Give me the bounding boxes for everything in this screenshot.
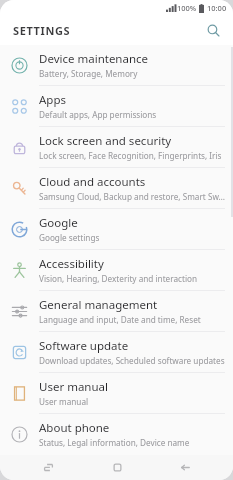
staticText: General management [39, 297, 158, 313]
button[interactable]: Lock screen and security [0, 127, 233, 168]
button[interactable]: Device maintenance [0, 45, 233, 86]
button[interactable]: Home [97, 455, 137, 480]
staticText: Status, Legal information, Device name [39, 437, 190, 448]
button[interactable]: Recents [28, 455, 68, 480]
button[interactable]: Search [201, 18, 225, 42]
button[interactable]: Back [165, 455, 205, 480]
staticText: Google settings [39, 232, 100, 243]
staticText: User manual [39, 396, 89, 407]
staticText: User manual [39, 379, 108, 395]
staticText: 100% [177, 3, 197, 13]
staticText: Apps [39, 92, 67, 108]
button[interactable]: About phone [0, 414, 233, 454]
staticText: Battery, Storage, Memory [39, 68, 138, 79]
button[interactable]: Accessibility [0, 250, 233, 291]
staticText: Device maintenance [39, 51, 149, 67]
staticText: Vision, Hearing, Dexterity and interacti… [39, 273, 198, 284]
staticText: Software update [39, 338, 129, 354]
staticText: Samsung Cloud, Backup and restore, Smart… [39, 191, 225, 202]
button[interactable]: Google [0, 209, 233, 250]
staticText: Language and input, Date and time, Reset [39, 314, 201, 325]
staticText: Accessibility [39, 256, 104, 272]
staticText: Lock screen, Face Recognition, Fingerpri… [39, 150, 222, 161]
button[interactable]: Cloud and accounts [0, 168, 233, 209]
button[interactable]: Software update [0, 332, 233, 373]
button[interactable]: General management [0, 291, 233, 332]
staticText: SETTINGS [13, 23, 71, 38]
staticText: About phone [39, 420, 110, 436]
staticText: 10:00 [207, 3, 227, 13]
staticText: Default apps, App permissions [39, 109, 157, 120]
staticText: Cloud and accounts [39, 174, 146, 190]
button[interactable]: User manual [0, 373, 233, 414]
staticText: Google [39, 215, 78, 231]
button[interactable]: Apps [0, 86, 233, 127]
staticText: Download updates, Scheduled software upd… [39, 355, 225, 366]
staticText: Lock screen and security [39, 133, 172, 149]
